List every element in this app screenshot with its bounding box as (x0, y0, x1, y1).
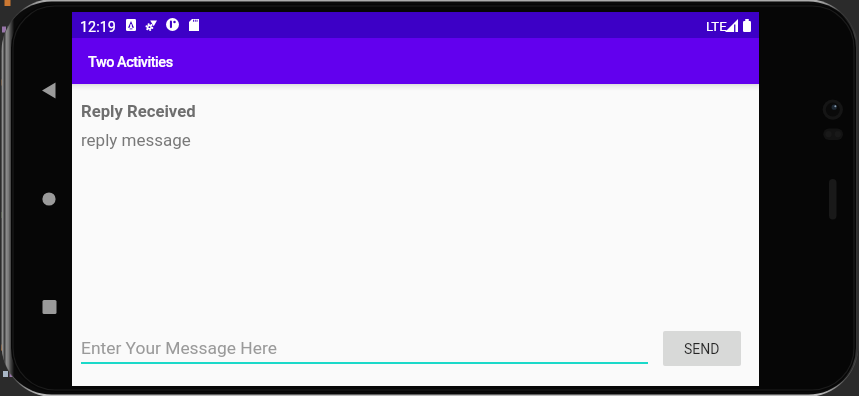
staticText: Enter Your Message Here (81, 338, 277, 358)
staticText: Reply Received (81, 102, 196, 122)
staticText: 12:19 (80, 19, 116, 36)
button[interactable]: Back (36, 77, 62, 103)
button[interactable]: Home (36, 186, 62, 212)
button[interactable]: Recent apps (36, 293, 62, 319)
staticText: reply message (81, 130, 191, 150)
staticText: SEND (684, 341, 720, 357)
button[interactable]: SEND (663, 331, 741, 366)
staticText: Two Activities (88, 54, 173, 71)
staticText: LTE (706, 19, 727, 34)
